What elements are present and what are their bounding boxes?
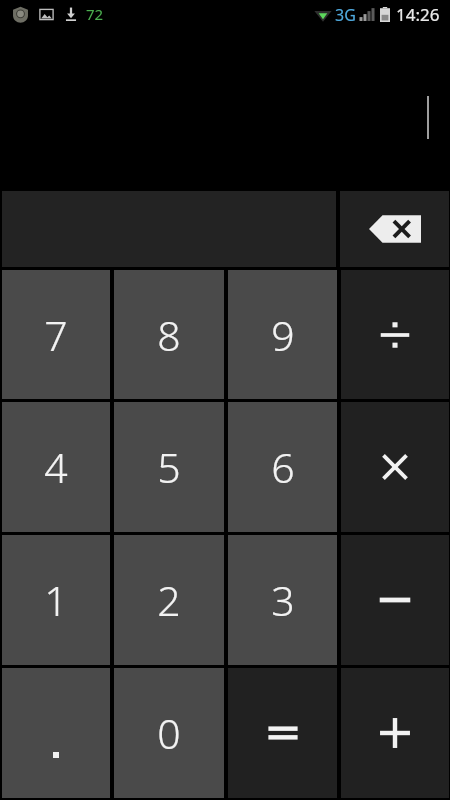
button[interactable]: 2 [114,535,224,665]
button[interactable]: Backspace [340,191,449,267]
button[interactable]: 3 [228,535,337,665]
button[interactable] [2,668,110,798]
button[interactable]: 5 [114,402,224,532]
staticText: 72 [86,4,104,24]
staticText: 0 [157,705,181,761]
staticText: 2 [157,572,181,628]
button[interactable]: 1 [2,535,110,665]
staticText: 14:26 [396,3,440,26]
button[interactable] [341,270,449,399]
button[interactable] [341,668,449,798]
staticText: 5 [157,439,181,495]
button[interactable]: 9 [228,270,337,399]
staticText: 4 [44,439,68,495]
button[interactable] [341,535,449,665]
button[interactable]: 7 [2,270,110,399]
staticText: 6 [271,439,295,495]
staticText: 8 [157,307,181,363]
staticText: 7 [44,307,68,363]
staticText: 3 [271,572,295,628]
button[interactable]: 6 [228,402,337,532]
button[interactable] [228,668,337,798]
button[interactable]: 0 [114,668,224,798]
staticText: 9 [271,307,295,363]
button[interactable] [341,402,449,532]
staticText: 1 [44,572,68,628]
button[interactable]: 4 [2,402,110,532]
staticText: 3G [335,4,356,26]
button[interactable]: 8 [114,270,224,399]
